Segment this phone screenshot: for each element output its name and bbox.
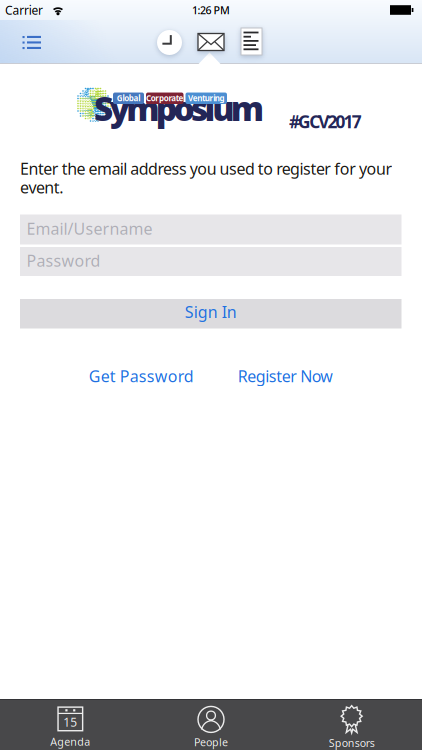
button[interactable]: Email/Username	[20, 214, 401, 244]
staticText: Carrier	[5, 2, 43, 18]
staticText: 1:26 PM	[192, 3, 230, 17]
button[interactable]: Sign In	[20, 299, 401, 328]
button[interactable]: Password	[20, 247, 401, 276]
staticText: Email/Username	[26, 218, 152, 239]
button[interactable]: Notes	[234, 24, 268, 58]
staticText: Symposium	[94, 86, 264, 130]
staticText: Agenda	[50, 734, 90, 749]
button[interactable]: Menu	[10, 24, 52, 60]
button[interactable]: 15	[0, 703, 141, 750]
staticText: Register Now	[238, 365, 333, 387]
staticText: Password	[26, 250, 100, 271]
staticText: event.	[20, 177, 63, 198]
button[interactable]: Get Password	[89, 359, 194, 393]
staticText: #GCV2017	[289, 110, 362, 133]
button[interactable]: Sponsors	[281, 703, 422, 750]
staticText: Venturing	[188, 93, 224, 103]
staticText: Global	[117, 93, 140, 103]
button[interactable]: People	[141, 703, 281, 750]
staticText: 15	[63, 714, 77, 730]
button[interactable]: Sign in	[194, 25, 228, 59]
button[interactable]: Register Now	[238, 359, 333, 393]
staticText: Sponsors	[329, 736, 375, 750]
staticText: Enter the email address you used to regi…	[20, 158, 392, 179]
staticText: Corporate	[146, 93, 183, 103]
staticText: Get Password	[89, 365, 194, 387]
staticText: People	[194, 735, 228, 749]
button[interactable]: Recent	[152, 25, 186, 59]
staticText: Sign In	[185, 301, 237, 322]
